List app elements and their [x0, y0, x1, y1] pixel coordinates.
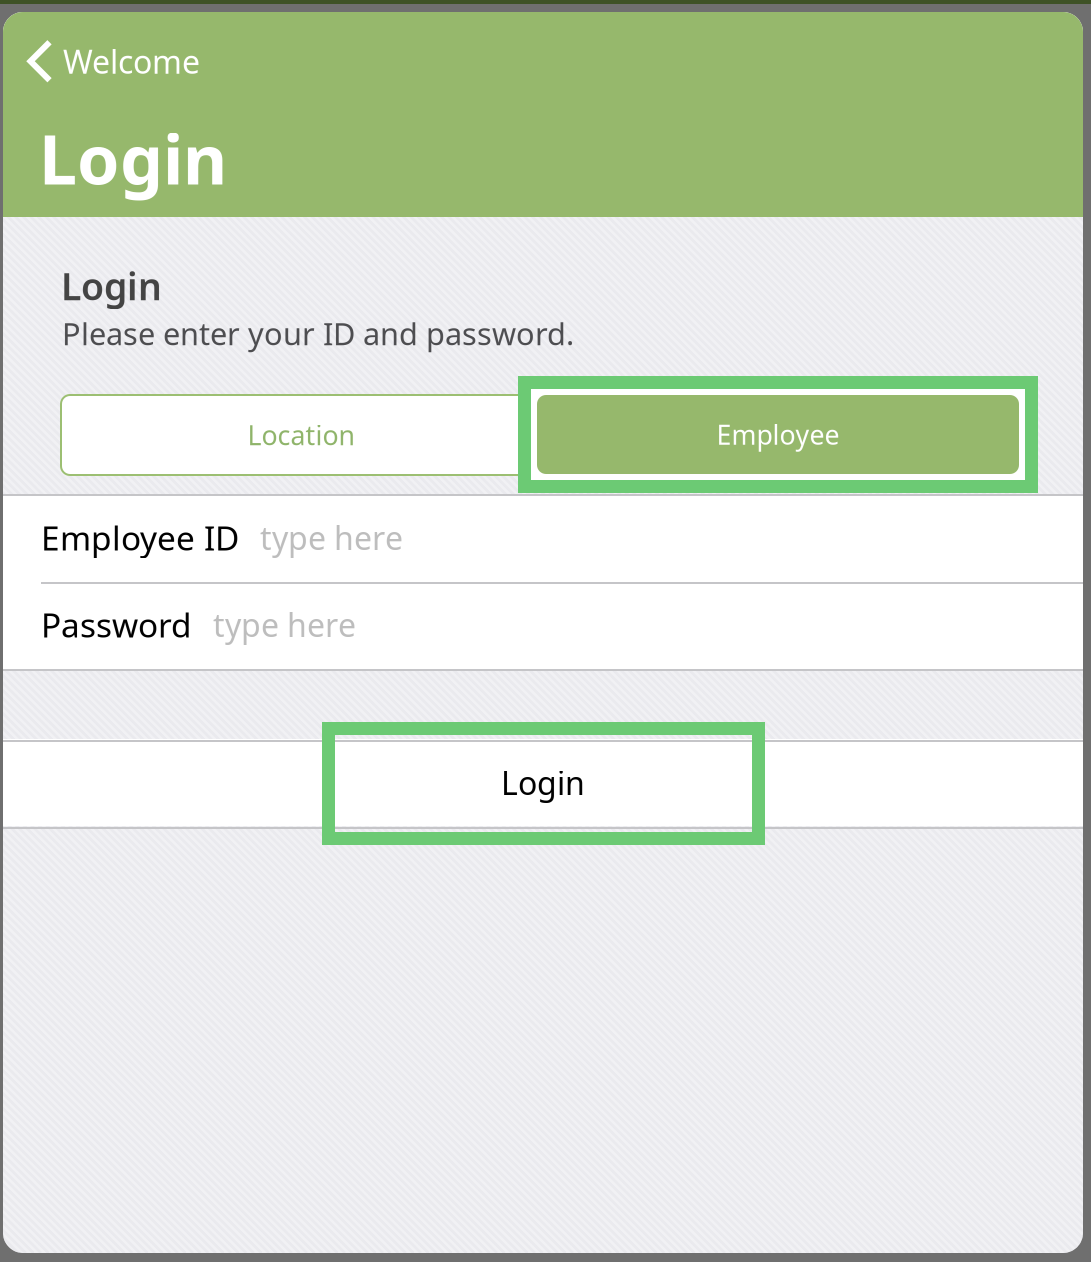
- staticText: Employee ID: [41, 515, 239, 560]
- button[interactable]: Employee: [518, 376, 1038, 493]
- button[interactable]: Location: [61, 395, 541, 475]
- staticText: Please enter your ID and password.: [62, 313, 574, 354]
- staticText: type here: [213, 603, 356, 646]
- staticText: type here: [260, 516, 403, 559]
- staticText: Login: [501, 761, 585, 804]
- staticText: Login: [39, 113, 227, 203]
- button[interactable]: Welcome: [19, 34, 208, 88]
- staticText: Welcome: [63, 40, 200, 82]
- staticText: Employee: [716, 417, 839, 452]
- button[interactable]: Login: [3, 739, 1083, 826]
- staticText: Login: [61, 261, 162, 311]
- staticText: Password: [41, 602, 192, 647]
- staticText: Location: [247, 417, 354, 453]
